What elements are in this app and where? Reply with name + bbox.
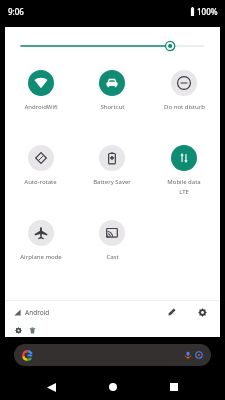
staticText: AndroidWifi xyxy=(24,103,58,111)
staticText: Do not disturb xyxy=(164,103,205,111)
button[interactable]: Android xyxy=(14,308,50,317)
button[interactable]: Search xyxy=(14,344,211,366)
button[interactable]: Back xyxy=(40,376,62,398)
button[interactable]: Do not disturb xyxy=(148,64,220,111)
staticText: Auto-rotate xyxy=(24,178,57,186)
staticText: LTE xyxy=(179,188,189,196)
button[interactable]: Mobile data xyxy=(148,139,220,196)
button[interactable]: Shortcut xyxy=(76,64,148,111)
button[interactable]: Battery Saver xyxy=(76,139,148,186)
staticText: 9:06 xyxy=(8,6,24,17)
button[interactable]: Settings xyxy=(194,304,210,320)
staticText: Battery Saver xyxy=(93,178,131,186)
button[interactable]: Brightness xyxy=(5,27,220,64)
staticText: Mobile data xyxy=(167,178,201,186)
staticText: Airplane mode xyxy=(20,253,62,261)
button[interactable]: Recent apps xyxy=(163,376,185,398)
staticText: Shortcut xyxy=(100,103,125,111)
button[interactable]: Cast xyxy=(76,214,148,261)
button[interactable]: Settings xyxy=(13,325,23,335)
button[interactable]: Edit xyxy=(164,304,180,320)
button[interactable]: Auto-rotate xyxy=(5,139,76,186)
button[interactable]: Home xyxy=(102,376,124,398)
staticText: Android xyxy=(25,308,50,317)
staticText: Cast xyxy=(106,253,119,261)
staticText: 100% xyxy=(197,6,218,17)
button[interactable]: AndroidWifi xyxy=(5,64,76,111)
button[interactable]: Airplane mode xyxy=(5,214,76,261)
button[interactable]: Delete xyxy=(27,325,37,335)
